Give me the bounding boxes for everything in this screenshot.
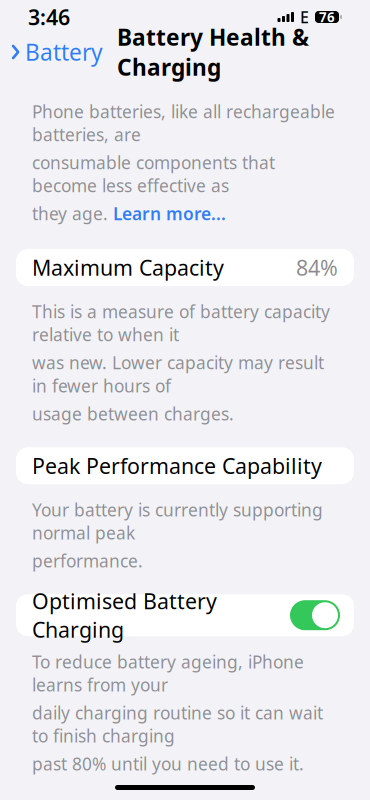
staticText: they age.: [32, 202, 113, 225]
staticText: Maximum Capacity: [32, 253, 224, 282]
staticText: was new. Lower capacity may result in fe…: [32, 351, 324, 397]
staticText: Peak Performance Capability: [32, 451, 322, 480]
staticText: To reduce battery ageing, iPhone learns …: [32, 650, 304, 696]
button[interactable]: Peak Performance Capability: [0, 447, 370, 484]
staticText: 84%: [296, 253, 338, 282]
staticText: usage between charges.: [32, 402, 234, 425]
button[interactable]: Battery: [0, 31, 107, 73]
staticText: performance.: [32, 549, 143, 572]
button[interactable]: Learn more...: [113, 202, 226, 225]
staticText: Learn more...: [113, 202, 226, 225]
staticText: E: [300, 6, 309, 28]
staticText: Battery: [25, 37, 103, 67]
staticText: 3:46: [28, 3, 70, 31]
button[interactable]: Optimised Battery Charging: [0, 594, 370, 636]
button[interactable]: Maximum Capacity: [0, 249, 370, 286]
staticText: 76: [319, 8, 335, 26]
staticText: daily charging routine so it can wait to…: [32, 701, 323, 747]
staticText: Phone batteries, like all rechargeable b…: [32, 100, 335, 146]
staticText: Battery Health & Charging: [117, 22, 309, 82]
staticText: Optimised Battery Charging: [32, 587, 217, 644]
staticText: past 80% until you need to use it.: [32, 752, 304, 775]
staticText: Your battery is currently supporting nor…: [32, 498, 323, 544]
staticText: consumable components that become less e…: [32, 151, 275, 197]
staticText: This is a measure of battery capacity re…: [32, 300, 330, 346]
